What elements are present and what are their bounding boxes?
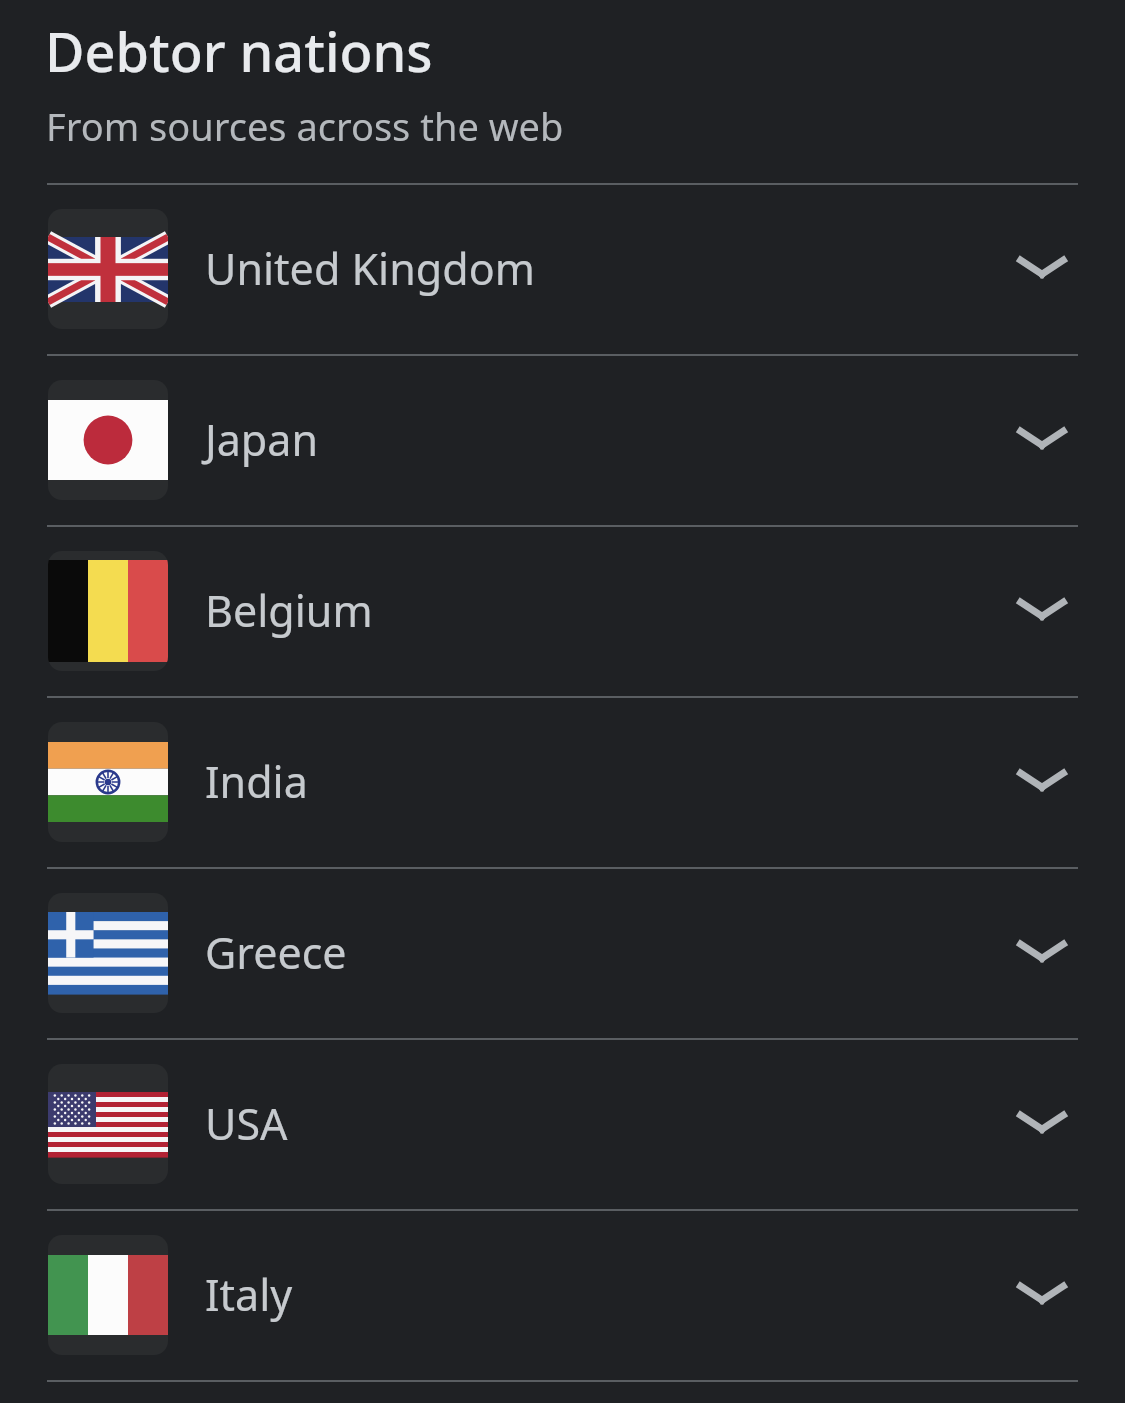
staticText: Debtor nations xyxy=(45,14,433,88)
button[interactable]: Expand Belgium xyxy=(992,561,1092,661)
button[interactable]: Italy xyxy=(0,1209,1125,1380)
button[interactable]: India xyxy=(0,696,1125,867)
button[interactable]: Expand USA xyxy=(992,1074,1092,1174)
button[interactable]: United Kingdom xyxy=(0,183,1125,354)
staticText: Greece xyxy=(205,923,347,982)
button[interactable]: Expand India xyxy=(992,732,1092,832)
button[interactable]: Japan xyxy=(0,354,1125,525)
button[interactable]: Expand Japan xyxy=(992,390,1092,490)
button[interactable]: Expand Greece xyxy=(992,903,1092,1003)
staticText: USA xyxy=(205,1094,288,1153)
button[interactable]: Expand United Kingdom xyxy=(992,219,1092,319)
button[interactable]: USA xyxy=(0,1038,1125,1209)
button[interactable]: Belgium xyxy=(0,525,1125,696)
button[interactable]: Expand Italy xyxy=(992,1245,1092,1345)
button[interactable]: Greece xyxy=(0,867,1125,1038)
staticText: India xyxy=(205,752,308,811)
staticText: Japan xyxy=(205,410,319,469)
staticText: From sources across the web xyxy=(46,100,564,152)
staticText: Italy xyxy=(205,1265,293,1324)
staticText: Belgium xyxy=(205,581,373,640)
staticText: United Kingdom xyxy=(205,239,535,298)
